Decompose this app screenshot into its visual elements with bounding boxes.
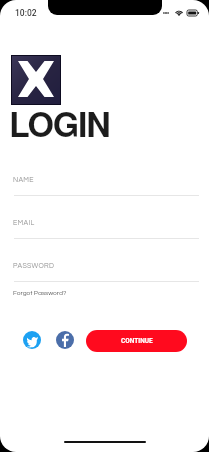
staticText: NAME xyxy=(13,176,34,183)
staticText: LOGIN xyxy=(9,99,110,148)
staticText: PASSWORD xyxy=(13,262,55,269)
staticText: Forgot Password? xyxy=(13,290,67,297)
staticText: EMAIL xyxy=(13,219,35,226)
staticText: 10:02 xyxy=(15,8,37,18)
button[interactable]: Forgot Password? xyxy=(13,290,67,297)
button[interactable]: Sign in with Twitter xyxy=(23,331,41,349)
button[interactable]: Sign in with Facebook xyxy=(56,331,74,349)
button[interactable]: CONTINUE xyxy=(86,330,187,352)
staticText: CONTINUE xyxy=(121,337,153,345)
